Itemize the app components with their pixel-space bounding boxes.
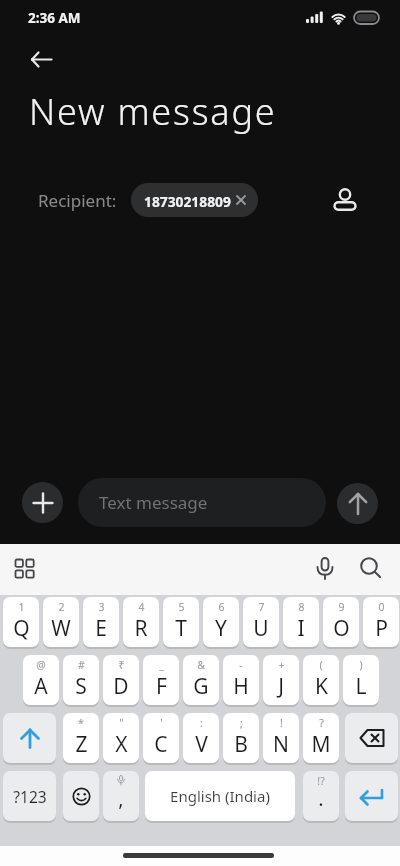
button[interactable]: +: [263, 655, 299, 705]
staticText: H: [233, 672, 249, 701]
staticText: 5: [178, 600, 185, 614]
staticText: 4: [138, 600, 145, 614]
staticText: M: [311, 730, 331, 759]
staticText: G: [193, 672, 209, 701]
button[interactable]: [358, 556, 384, 582]
staticText: 1: [18, 600, 25, 614]
staticText: #: [78, 658, 85, 672]
button[interactable]: :: [183, 713, 219, 763]
staticText: Y: [215, 614, 227, 643]
button[interactable]: ': [143, 713, 179, 763]
button[interactable]: 9: [323, 597, 359, 647]
button[interactable]: 4: [123, 597, 159, 647]
staticText: B: [234, 730, 248, 759]
button[interactable]: [3, 713, 56, 763]
button[interactable]: [313, 556, 337, 582]
button[interactable]: ,: [103, 771, 139, 821]
staticText: +: [278, 658, 285, 672]
button[interactable]: 18730218809: [131, 183, 258, 217]
button[interactable]: ;: [223, 713, 259, 763]
staticText: 0: [378, 600, 385, 614]
staticText: 8: [298, 600, 305, 614]
staticText: ;: [240, 716, 243, 730]
staticText: D: [113, 672, 129, 701]
staticText: 6: [218, 600, 225, 614]
staticText: F: [156, 672, 167, 701]
button[interactable]: 7: [243, 597, 279, 647]
button[interactable]: -: [223, 655, 259, 705]
button[interactable]: (: [303, 655, 339, 705]
staticText: O: [333, 614, 350, 643]
button[interactable]: [331, 186, 359, 214]
staticText: @: [36, 658, 46, 672]
button[interactable]: 2: [43, 597, 79, 647]
staticText: L: [355, 672, 367, 701]
staticText: ?: [319, 716, 324, 730]
staticText: !: [280, 716, 283, 730]
staticText: ': [160, 716, 163, 730]
staticText: ,: [118, 785, 124, 812]
staticText: W: [51, 614, 71, 643]
staticText: &: [197, 658, 205, 672]
staticText: 3: [98, 600, 105, 614]
button[interactable]: 1: [3, 597, 39, 647]
staticText: E: [95, 614, 107, 643]
button[interactable]: ?: [303, 713, 339, 763]
button[interactable]: ₹: [103, 655, 139, 705]
staticText: S: [75, 672, 87, 701]
button[interactable]: !: [263, 713, 299, 763]
staticText: New message: [29, 87, 277, 136]
button[interactable]: 6: [203, 597, 239, 647]
button[interactable]: [337, 483, 378, 524]
staticText: Q: [13, 614, 30, 643]
button[interactable]: [345, 771, 398, 821]
button[interactable]: [63, 771, 99, 821]
button[interactable]: _: [143, 655, 179, 705]
staticText: V: [195, 730, 208, 759]
staticText: 2:36 AM: [28, 9, 81, 27]
button[interactable]: &: [183, 655, 219, 705]
staticText: N: [273, 730, 289, 759]
button[interactable]: ?123: [3, 771, 56, 821]
button[interactable]: [22, 482, 63, 523]
staticText: I: [297, 614, 305, 643]
staticText: 18730218809: [144, 192, 231, 211]
staticText: ): [359, 658, 363, 672]
staticText: ?123: [13, 786, 47, 807]
button[interactable]: @: [23, 655, 59, 705]
staticText: .: [318, 785, 324, 812]
button[interactable]: ): [343, 655, 379, 705]
button[interactable]: [27, 45, 57, 75]
staticText: Z: [75, 730, 88, 759]
staticText: U: [253, 614, 269, 643]
button[interactable]: 5: [163, 597, 199, 647]
button[interactable]: 3: [83, 597, 119, 647]
button[interactable]: [345, 713, 398, 763]
staticText: *: [78, 716, 84, 730]
button[interactable]: 0: [363, 597, 399, 647]
staticText: Recipient:: [38, 189, 117, 212]
button[interactable]: #: [63, 655, 99, 705]
staticText: 2: [58, 600, 65, 614]
staticText: 9: [338, 600, 345, 614]
button[interactable]: 8: [283, 597, 319, 647]
staticText: -: [239, 658, 243, 672]
staticText: R: [134, 614, 148, 643]
staticText: English (India): [170, 786, 270, 806]
button[interactable]: !?: [303, 771, 339, 821]
staticText: :: [200, 716, 203, 730]
button[interactable]: [13, 557, 36, 580]
button[interactable]: ": [103, 713, 139, 763]
staticText: (: [319, 658, 323, 672]
staticText: Text message: [99, 491, 208, 514]
staticText: T: [175, 614, 187, 643]
button[interactable]: *: [63, 713, 99, 763]
staticText: ₹: [118, 658, 125, 672]
staticText: J: [278, 672, 284, 701]
button[interactable]: English (India): [145, 771, 295, 821]
button[interactable]: Text message: [78, 478, 326, 527]
staticText: 7: [258, 600, 265, 614]
staticText: P: [375, 614, 388, 643]
staticText: X: [115, 730, 128, 759]
staticText: C: [154, 730, 168, 759]
